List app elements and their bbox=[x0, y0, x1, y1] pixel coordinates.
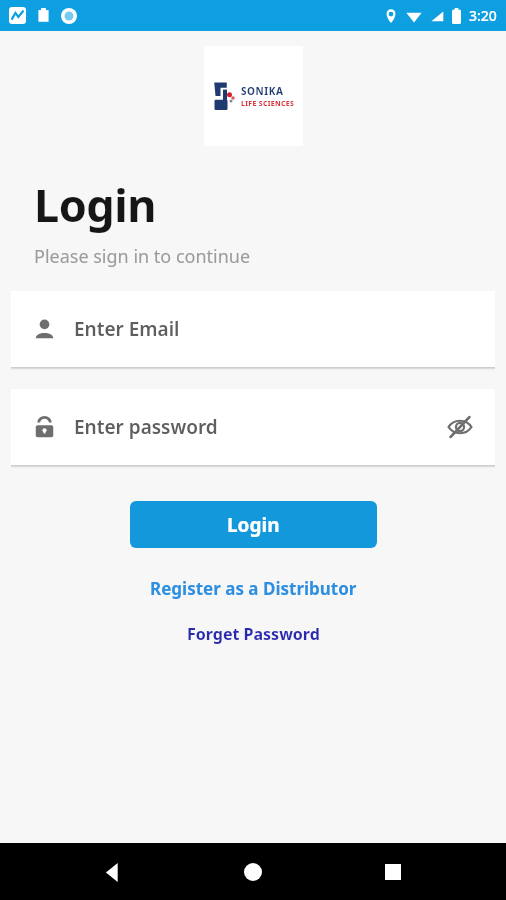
staticText: 3:20 bbox=[469, 6, 497, 25]
button[interactable]: Show password bbox=[445, 412, 475, 442]
staticText: Please sign in to continue bbox=[34, 244, 251, 269]
button[interactable]: Login bbox=[130, 501, 377, 548]
button[interactable]: Enter Email bbox=[11, 291, 495, 367]
staticText: Enter Email bbox=[74, 316, 180, 342]
staticText: Login bbox=[34, 174, 156, 235]
button[interactable]: Forget Password bbox=[175, 619, 332, 649]
staticText: Register as a Distributor bbox=[150, 577, 357, 600]
button[interactable]: Register as a Distributor bbox=[138, 573, 369, 604]
button[interactable]: Back bbox=[86, 845, 140, 899]
button[interactable]: Enter password bbox=[11, 389, 495, 465]
staticText: Login bbox=[227, 512, 280, 538]
staticText: LIFE SCIENCES bbox=[241, 99, 295, 109]
staticText: Enter password bbox=[74, 414, 218, 440]
button[interactable]: Home bbox=[226, 845, 280, 899]
button[interactable]: Recent apps bbox=[366, 845, 420, 899]
staticText: Forget Password bbox=[187, 623, 320, 645]
staticText: SONIKA bbox=[241, 84, 284, 98]
